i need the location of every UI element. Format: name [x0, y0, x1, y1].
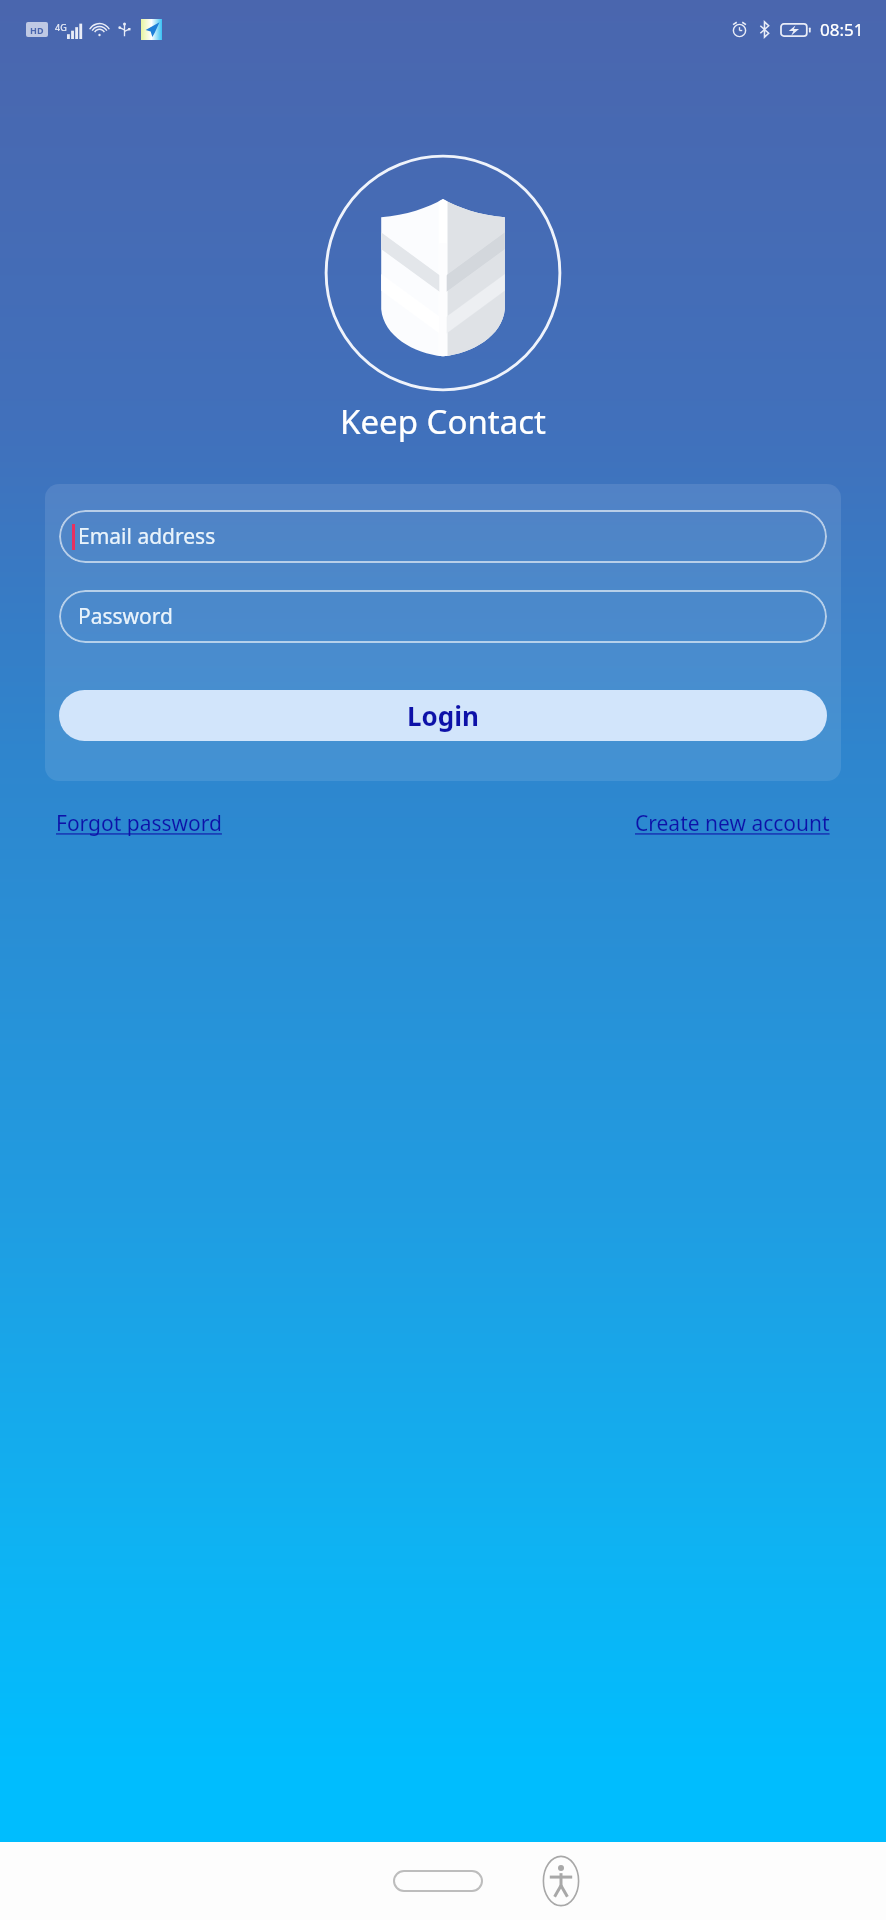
button[interactable]: Login — [59, 690, 827, 741]
staticText: Forgot password — [56, 809, 222, 838]
staticText: 4G — [55, 21, 67, 33]
staticText: Password — [78, 602, 173, 631]
button[interactable]: Create new account — [635, 803, 830, 844]
staticText: Login — [407, 698, 479, 733]
button[interactable]: Password — [59, 590, 827, 643]
button[interactable]: Email address — [59, 510, 827, 563]
button[interactable]: Accessibility — [541, 1853, 581, 1909]
button[interactable]: Home — [393, 1870, 483, 1892]
button[interactable]: Forgot password — [56, 803, 222, 844]
staticText: 08:51 — [820, 18, 864, 41]
staticText: Create new account — [635, 809, 830, 838]
staticText: HD — [30, 24, 44, 36]
staticText: Email address — [78, 522, 216, 551]
staticText: Keep Contact — [340, 399, 546, 444]
